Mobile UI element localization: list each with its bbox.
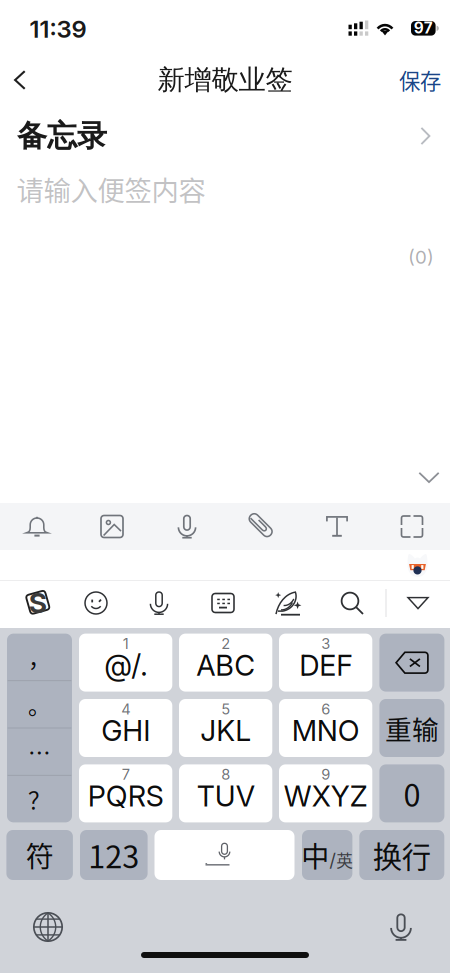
staticText: 新增敬业签 — [157, 63, 292, 97]
staticText: 97 — [414, 18, 433, 37]
button[interactable]: Sogou input — [6, 579, 70, 626]
button[interactable]: Text format — [300, 503, 374, 550]
staticText: 5 — [221, 700, 230, 718]
staticText: / — [329, 849, 336, 871]
staticText: 3 — [321, 635, 330, 652]
staticText: 11:39 — [29, 14, 86, 43]
staticText: (0) — [408, 246, 434, 268]
button[interactable]: 1 — [79, 634, 172, 692]
button[interactable]: Full screen — [375, 503, 449, 550]
button[interactable]: 7 — [79, 764, 172, 822]
button[interactable]: Keyboard layout — [191, 579, 255, 626]
staticText: 保存 — [399, 65, 441, 95]
button[interactable]: 备忘录 — [0, 108, 450, 164]
staticText: 0 — [403, 771, 420, 816]
staticText: 123 — [88, 833, 139, 877]
button[interactable]: Collapse — [406, 458, 450, 498]
button[interactable]: 4 — [79, 699, 172, 757]
staticText: TUV — [197, 779, 255, 813]
button[interactable]: Handwriting — [256, 579, 320, 626]
staticText: ， — [28, 641, 51, 674]
staticText: 英 — [336, 848, 353, 872]
staticText: DEF — [299, 648, 352, 683]
staticText: 符 — [26, 835, 54, 875]
staticText: 换行 — [373, 834, 431, 876]
button[interactable]: 5 — [179, 699, 272, 757]
staticText: 。 — [28, 688, 51, 721]
button[interactable]: Chinese English toggle — [302, 830, 352, 880]
staticText: 8 — [221, 766, 230, 783]
button[interactable]: 换行 — [359, 830, 444, 880]
button[interactable]: Emoji — [64, 579, 128, 626]
button[interactable]: Space — [154, 830, 294, 880]
staticText: 备忘录 — [17, 117, 107, 155]
button[interactable]: 6 — [279, 699, 372, 757]
button[interactable]: Voice input — [127, 579, 191, 626]
button[interactable]: 8 — [179, 764, 272, 822]
button[interactable]: Switch keyboard — [22, 904, 74, 950]
button[interactable]: 3 — [279, 634, 372, 692]
button[interactable]: 重输 — [379, 699, 444, 757]
button[interactable]: 2 — [179, 634, 272, 692]
button[interactable]: 123 — [80, 830, 148, 880]
staticText: 请输入便签内容 — [17, 169, 206, 209]
button[interactable]: 0 — [379, 764, 444, 822]
button[interactable]: Voice note — [150, 503, 224, 550]
staticText: … — [28, 735, 51, 768]
button[interactable]: ， — [7, 634, 72, 822]
button[interactable]: Attachment — [225, 503, 299, 550]
button[interactable]: 保存 — [388, 58, 450, 102]
button[interactable]: Hide keyboard — [388, 579, 448, 626]
button[interactable]: 9 — [279, 764, 372, 822]
button[interactable]: Back — [0, 57, 43, 103]
staticText: GHI — [101, 713, 150, 748]
staticText: ？ — [28, 782, 51, 815]
staticText: PQRS — [88, 779, 164, 813]
button[interactable]: Dictation — [375, 904, 427, 950]
staticText: 重输 — [385, 709, 439, 747]
staticText: 7 — [122, 766, 130, 783]
button[interactable]: 符 — [6, 830, 73, 880]
button[interactable]: Search — [320, 579, 384, 626]
staticText: 2 — [221, 635, 230, 652]
staticText: WXYZ — [284, 779, 368, 813]
staticText: ABC — [196, 648, 255, 683]
staticText: 9 — [321, 766, 330, 783]
staticText: @/. — [104, 648, 147, 683]
staticText: JKL — [200, 713, 251, 748]
staticText: S — [29, 586, 47, 620]
button[interactable]: Reminder — [0, 503, 74, 550]
staticText: 中 — [301, 835, 329, 875]
button[interactable]: Photo — [75, 503, 149, 550]
staticText: 4 — [121, 700, 130, 718]
staticText: MNO — [292, 713, 360, 748]
button[interactable]: Delete — [379, 634, 444, 692]
staticText: 6 — [321, 700, 330, 718]
staticText: 1 — [123, 635, 129, 652]
